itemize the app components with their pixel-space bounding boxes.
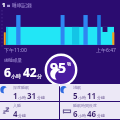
button[interactable]: 睡眠時間長度 [60, 102, 120, 119]
staticText: 4 [13, 108, 18, 119]
staticText: 46 [87, 108, 97, 119]
staticText: 小時 [18, 95, 26, 100]
staticText: 分鐘 [18, 113, 26, 118]
staticText: 上午6:47 [96, 47, 116, 54]
staticText: 分鐘 [97, 95, 105, 100]
staticText: 95 [50, 58, 67, 77]
staticText: 42 [23, 64, 37, 80]
button[interactable]: 淺眠 [60, 84, 120, 101]
staticText: 小時 [78, 95, 86, 100]
staticText: 睡眠時間長度 [73, 103, 97, 108]
staticText: 深度睡眠 [13, 85, 29, 90]
staticText: 分鐘 [97, 113, 105, 118]
staticText: 1 [13, 90, 18, 101]
button[interactable]: 總睡眠量 [4, 58, 42, 80]
staticText: 睡眠記錄 [12, 2, 32, 8]
button[interactable] [0, 10, 120, 46]
staticText: 下午11:00 [4, 47, 27, 54]
staticText: 6 [4, 64, 11, 80]
staticText: 6 [73, 108, 78, 119]
staticText: 11 [87, 90, 97, 101]
staticText: 小時 [78, 113, 86, 118]
button[interactable]: 睡眠分數 95% [44, 53, 78, 87]
staticText: 1 [2, 1, 6, 9]
staticText: 入睡 [13, 103, 21, 108]
staticText: 小時 [11, 73, 21, 79]
staticText: 31 [27, 90, 37, 101]
button[interactable]: 入睡 [0, 102, 59, 119]
button[interactable]: 深度睡眠 [0, 84, 59, 101]
staticText: % [67, 61, 72, 68]
staticText: 5 [73, 90, 78, 101]
staticText: 總睡眠量 [4, 58, 22, 64]
staticText: 淺眠 [73, 85, 81, 90]
staticText: 分鐘 [37, 95, 45, 100]
staticText: 分 [37, 73, 42, 79]
